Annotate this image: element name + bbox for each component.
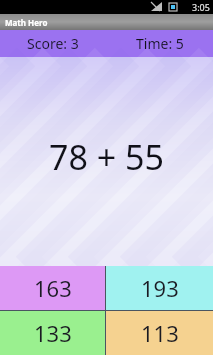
staticText: Math Hero: [5, 17, 48, 28]
button[interactable]: 163: [0, 266, 105, 310]
staticText: 78 + 55: [0, 134, 213, 180]
staticText: 133: [34, 318, 72, 348]
staticText: 3:05: [192, 1, 210, 13]
button[interactable]: 133: [0, 311, 105, 355]
staticText: Time: 5: [136, 34, 184, 53]
staticText: 193: [141, 273, 179, 303]
staticText: 163: [34, 273, 72, 303]
staticText: Score: 3: [27, 34, 79, 53]
button[interactable]: 113: [106, 311, 213, 355]
staticText: 113: [141, 318, 179, 348]
button[interactable]: 193: [106, 266, 213, 310]
